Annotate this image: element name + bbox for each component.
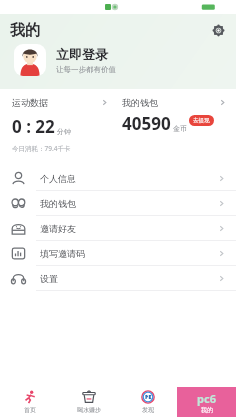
staticText: 我的钱包 xyxy=(40,198,76,209)
staticText: 去提现 xyxy=(193,117,210,124)
button[interactable]: 填写邀请码 xyxy=(0,241,236,266)
button[interactable]: 首页 xyxy=(0,384,59,420)
staticText: 邀请好友 xyxy=(40,223,76,234)
staticText: 立即登录 xyxy=(56,46,108,62)
staticText: 金币 xyxy=(173,124,187,133)
staticText: 设置 xyxy=(40,273,58,284)
button[interactable]: 我的钱包 xyxy=(118,97,236,135)
staticText: 填写邀请码 xyxy=(40,248,85,259)
button[interactable]: 立即登录 xyxy=(14,44,116,76)
staticText: 我的 xyxy=(10,21,40,40)
button[interactable]: 我的 xyxy=(177,384,236,420)
button[interactable]: 设置 xyxy=(0,266,236,291)
staticText: 我的 xyxy=(201,406,213,414)
button[interactable]: 我的钱包 xyxy=(0,191,236,216)
staticText: 运动数据 xyxy=(12,97,48,108)
button[interactable]: 个人信息 xyxy=(0,166,236,191)
staticText: 分钟 xyxy=(57,127,71,136)
staticText: 首页 xyxy=(24,406,36,414)
button[interactable]: 发现 xyxy=(118,384,177,420)
staticText: 喝水赚步 xyxy=(77,406,101,414)
staticText: 今日消耗：79.4千卡 xyxy=(12,144,71,153)
button[interactable]: 设置 xyxy=(208,20,228,40)
button[interactable]: 去提现 xyxy=(189,115,214,126)
staticText: 40590 xyxy=(122,112,171,135)
button[interactable]: 邀请好友 xyxy=(0,216,236,241)
staticText: 让每一步都有价值 xyxy=(56,65,116,74)
staticText: 发现 xyxy=(142,406,154,414)
button[interactable]: 喝水赚步 xyxy=(59,384,118,420)
staticText: pc6 xyxy=(197,391,216,406)
button[interactable]: 运动数据 xyxy=(0,97,118,153)
staticText: 个人信息 xyxy=(40,173,76,184)
staticText: 我的钱包 xyxy=(122,97,158,108)
staticText: 0 : 22 xyxy=(12,115,55,138)
